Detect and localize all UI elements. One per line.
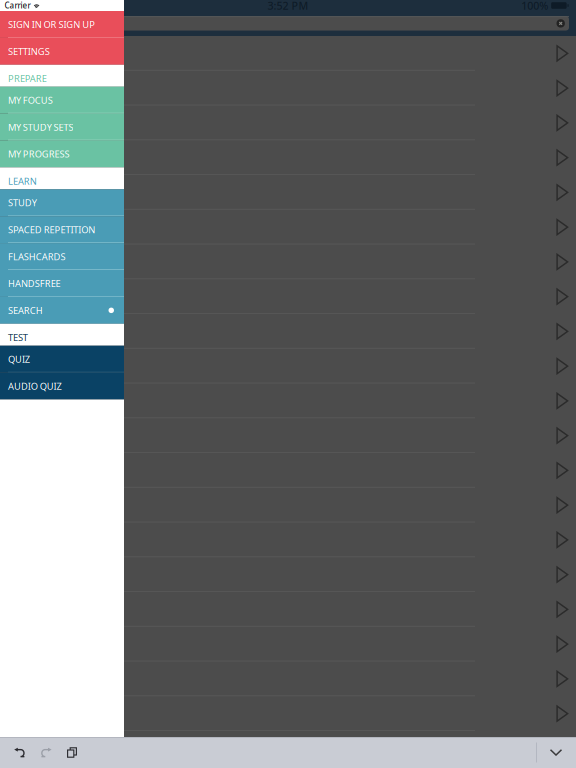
staticText: SEARCH: [8, 304, 43, 317]
button[interactable]: SIGN IN OR SIGN UP: [0, 11, 124, 38]
staticText: MY FOCUS: [8, 94, 53, 106]
button[interactable]: SPACED REPETITION: [0, 216, 124, 243]
button[interactable]: HANDSFREE: [0, 270, 124, 297]
staticText: HANDSFREE: [8, 277, 61, 290]
staticText: PREPARE: [8, 72, 47, 85]
button[interactable]: SEARCH: [0, 297, 124, 324]
staticText: Carrier: [4, 0, 30, 11]
staticText: SPACED REPETITION: [8, 223, 95, 236]
staticText: QUIZ: [8, 353, 30, 365]
staticText: LEARN: [8, 175, 37, 187]
staticText: SETTINGS: [8, 45, 50, 58]
staticText: MY PROGRESS: [8, 148, 69, 160]
button[interactable]: AUDIO QUIZ: [0, 373, 124, 399]
staticText: 3:52 PM: [267, 0, 308, 13]
staticText: 100%: [521, 0, 548, 13]
button[interactable]: Redo: [40, 747, 52, 757]
staticText: FLASHCARDS: [8, 250, 66, 263]
button[interactable]: Undo: [14, 747, 25, 757]
staticText: STUDY: [8, 197, 37, 209]
button[interactable]: Paste: [67, 747, 77, 758]
button[interactable]: MY FOCUS: [0, 87, 124, 114]
staticText: TEST: [8, 331, 28, 344]
staticText: MY STUDY SETS: [8, 121, 73, 133]
button[interactable]: FLASHCARDS: [0, 243, 124, 270]
button[interactable]: MY STUDY SETS: [0, 114, 124, 140]
staticText: AUDIO QUIZ: [8, 380, 62, 392]
staticText: SIGN IN OR SIGN UP: [8, 18, 95, 31]
button[interactable]: Hide keyboard: [537, 737, 575, 768]
button[interactable]: STUDY: [0, 189, 124, 216]
button[interactable]: MY PROGRESS: [0, 140, 124, 167]
button[interactable]: SETTINGS: [0, 38, 124, 65]
button[interactable]: QUIZ: [0, 346, 124, 373]
